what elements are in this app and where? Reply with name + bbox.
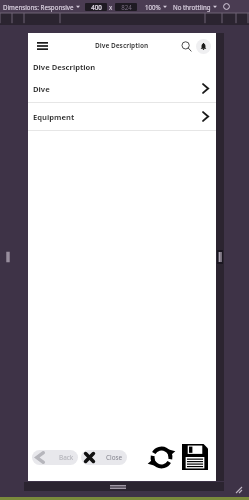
- staticText: Dimensions: Responsive: [3, 3, 74, 11]
- button[interactable]: Resize width: [5, 250, 11, 264]
- staticText: 100%: [145, 3, 161, 11]
- button[interactable]: 400: [85, 3, 107, 11]
- button[interactable]: Search: [178, 38, 194, 54]
- button[interactable]: Back: [32, 450, 78, 465]
- button[interactable]: Refresh: [145, 441, 177, 473]
- staticText: 400: [91, 3, 102, 11]
- staticText: x: [109, 3, 113, 11]
- button[interactable]: Close: [81, 450, 127, 465]
- staticText: Back: [59, 453, 74, 462]
- staticText: Dive Description: [95, 41, 149, 50]
- staticText: 824: [121, 3, 132, 11]
- button[interactable]: Menu: [34, 37, 51, 54]
- button[interactable]: Dive: [28, 75, 216, 102]
- button[interactable]: Notifications: [196, 39, 211, 54]
- button[interactable]: 824: [115, 3, 137, 11]
- button[interactable]: Rotate: [222, 2, 231, 11]
- staticText: Dive Description: [33, 62, 96, 72]
- button[interactable]: Resize corner: [232, 483, 242, 493]
- button[interactable]: Equipment: [28, 103, 216, 130]
- button[interactable]: Resize height: [110, 484, 126, 490]
- staticText: Dive: [33, 84, 50, 94]
- staticText: No throttling: [173, 3, 211, 11]
- button[interactable]: Resize width right: [217, 250, 223, 264]
- button[interactable]: Save: [179, 441, 211, 473]
- staticText: Equipment: [33, 112, 75, 122]
- staticText: Close: [106, 453, 123, 462]
